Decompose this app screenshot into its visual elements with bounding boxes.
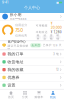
staticText: 750 bbox=[15, 28, 23, 33]
button[interactable]: 我的 bbox=[46, 90, 60, 100]
staticText: 提额 bbox=[50, 34, 53, 40]
staticText: 建议开启指纹解锁 bbox=[8, 44, 29, 51]
button[interactable]: 账户安全中心 bbox=[0, 41, 64, 49]
staticText: 信用优秀 bbox=[15, 34, 27, 37]
staticText: 去开启 bbox=[31, 43, 40, 47]
button[interactable]: 优惠券 bbox=[0, 74, 64, 82]
staticText: 设置 bbox=[8, 83, 16, 88]
staticText: 138****8888 bbox=[10, 17, 27, 21]
button[interactable]: 账单 bbox=[36, 35, 41, 39]
staticText: 3 笔 bbox=[53, 52, 59, 56]
button[interactable]: 张小明 bbox=[0, 13, 64, 20]
staticText: 还款 bbox=[43, 34, 46, 40]
staticText: 优惠券 bbox=[8, 75, 20, 80]
staticText: 明细 bbox=[57, 34, 60, 40]
staticText: 个人中心 bbox=[24, 5, 40, 10]
staticText: 首页 bbox=[8, 95, 14, 99]
button[interactable]: 首页 bbox=[4, 90, 18, 100]
staticText: 12 bbox=[56, 68, 59, 71]
button[interactable]: 购物车 bbox=[32, 90, 46, 100]
button[interactable]: 我的订单 bbox=[0, 50, 64, 58]
staticText: 我的收藏 bbox=[8, 67, 24, 72]
button[interactable]: 提额 bbox=[49, 35, 54, 39]
staticText: 信用总分 bbox=[15, 23, 27, 27]
staticText: 收货地址 bbox=[8, 59, 24, 64]
staticText: ¥ 20,000 bbox=[51, 22, 62, 29]
staticText: ▮▮ bbox=[56, 1, 58, 4]
staticText: 我的订单 bbox=[8, 52, 24, 56]
button[interactable]: 我的收藏 bbox=[0, 66, 64, 74]
staticText: 已保护 128 天 bbox=[43, 43, 62, 47]
button[interactable]: 分类 bbox=[18, 90, 32, 100]
staticText: 本期应还 bbox=[36, 30, 48, 34]
staticText: 购物车 bbox=[34, 95, 43, 99]
staticText: 张小明 bbox=[10, 12, 22, 17]
staticText: 分类 bbox=[22, 95, 28, 99]
staticText: 9:41 bbox=[2, 1, 8, 4]
staticText: 可用额度 bbox=[36, 24, 48, 27]
button[interactable]: 明细 bbox=[56, 35, 61, 39]
button[interactable]: 还款 bbox=[42, 35, 47, 39]
staticText: 账户安全中心 bbox=[8, 39, 26, 44]
button[interactable]: 收货地址 bbox=[0, 58, 64, 66]
staticText: 账单 bbox=[37, 34, 40, 40]
staticText: 我的 bbox=[50, 95, 56, 99]
staticText: ¥ 1,280 bbox=[51, 30, 62, 34]
button[interactable]: 设置 bbox=[0, 82, 64, 89]
